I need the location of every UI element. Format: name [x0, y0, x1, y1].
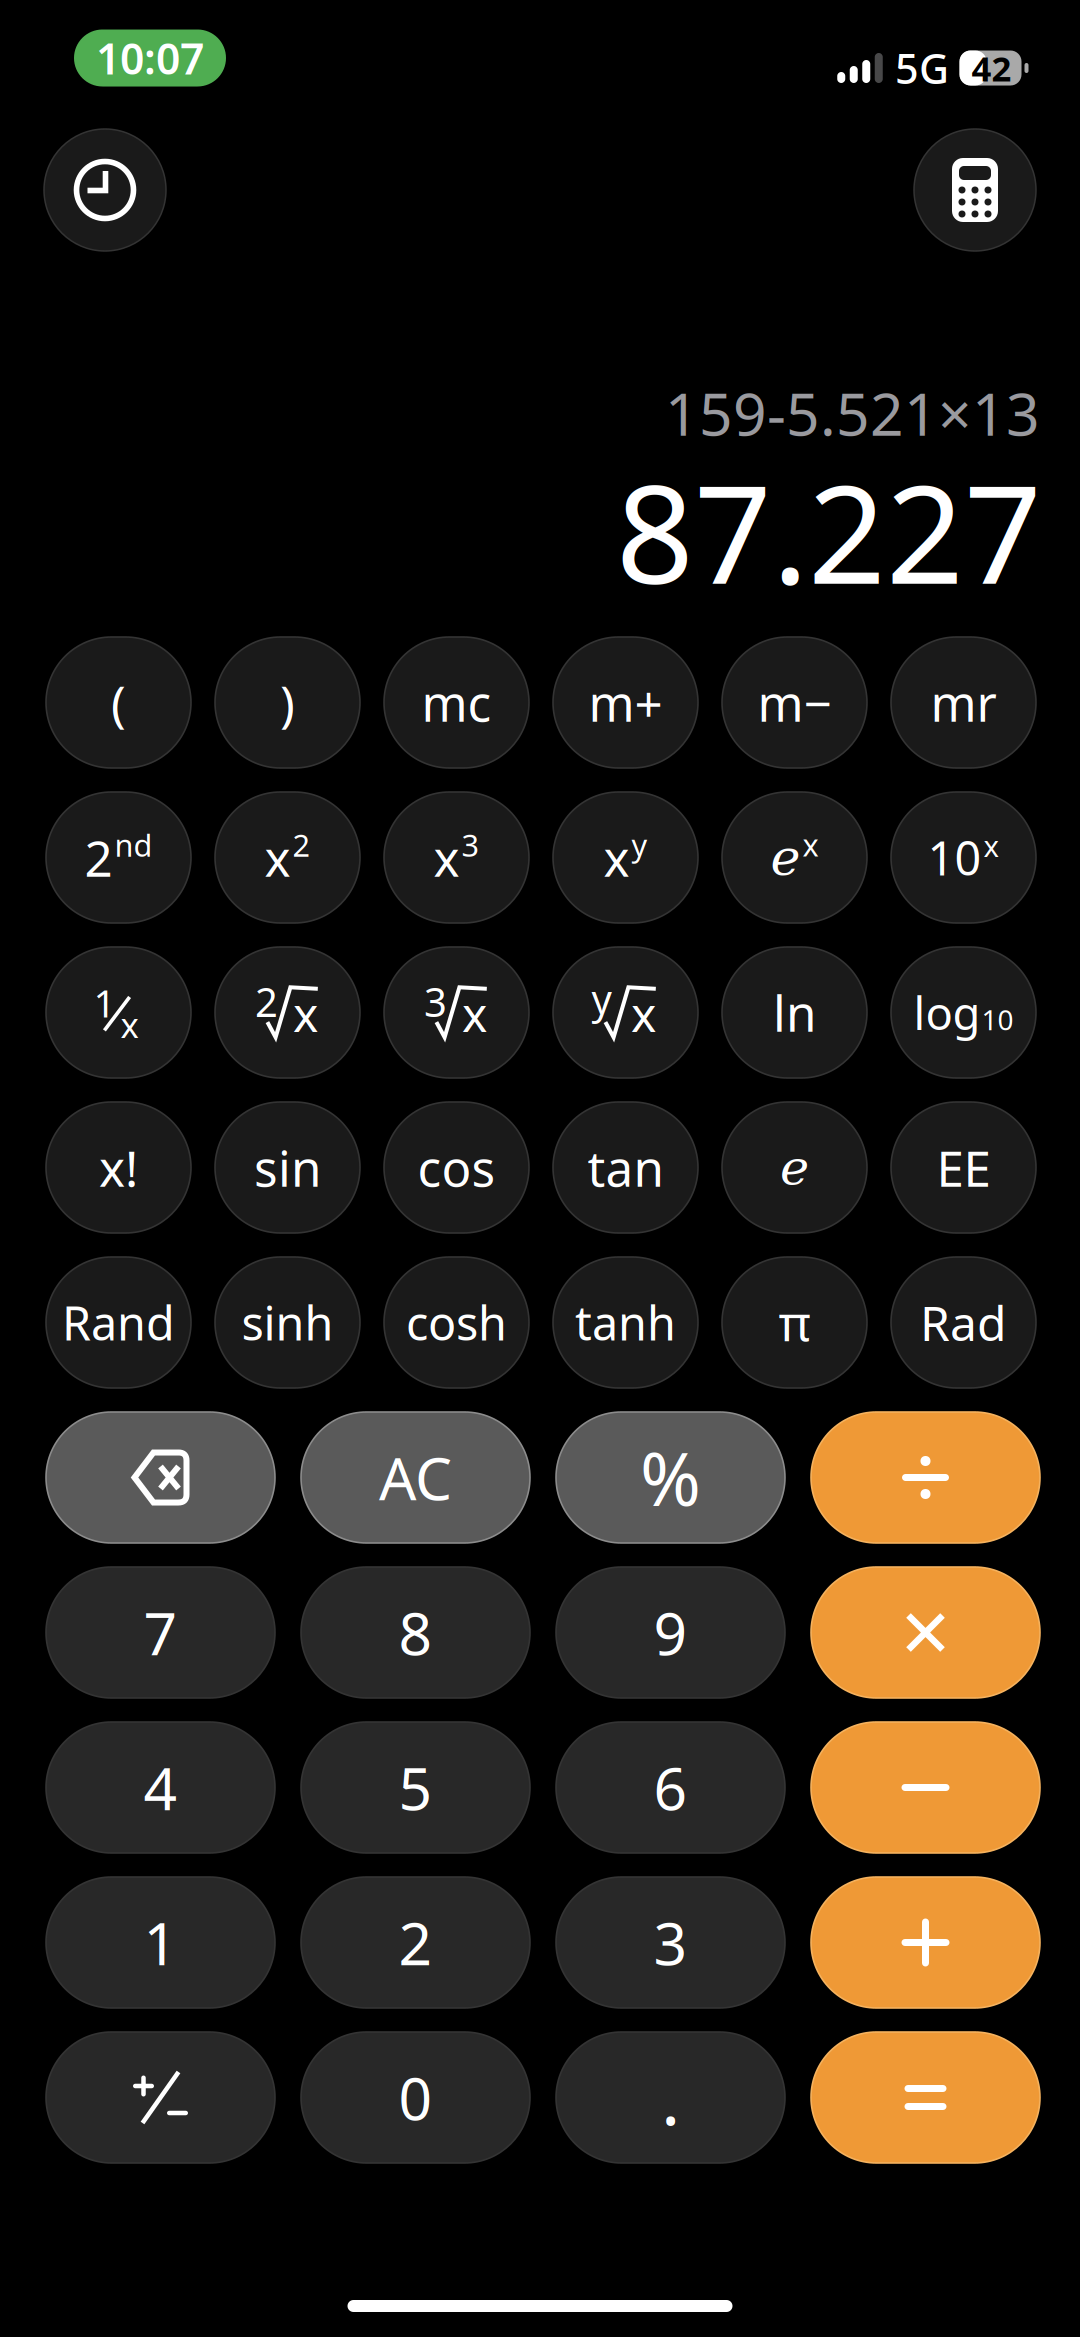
button[interactable]: Choose calculator mode	[914, 129, 1036, 251]
button[interactable]: 9	[556, 1567, 785, 1698]
button[interactable]: tanh	[553, 1257, 698, 1388]
button[interactable]: %	[556, 1412, 785, 1543]
staticText: 3	[461, 825, 479, 865]
button[interactable]: m−	[722, 637, 867, 768]
button[interactable]: )	[215, 637, 360, 768]
button[interactable]: 6	[556, 1722, 785, 1853]
button[interactable]: 2 nd	[46, 792, 191, 923]
button[interactable]: y root of x	[553, 947, 698, 1078]
staticText: m−	[757, 670, 831, 735]
button[interactable]: Equals	[811, 2032, 1040, 2163]
button[interactable]: Divide	[811, 1412, 1040, 1543]
staticText: x	[983, 826, 999, 865]
button[interactable]: 3 root of x	[384, 947, 529, 1078]
staticText: x!	[99, 1135, 138, 1200]
staticText: AC	[379, 1438, 452, 1516]
staticText: e	[780, 1139, 809, 1196]
staticText: Rad	[920, 1291, 1007, 1354]
button[interactable]: .	[556, 2032, 785, 2163]
staticText: x	[120, 1001, 138, 1047]
button[interactable]: Multiply	[811, 1567, 1040, 1698]
staticText: x	[293, 982, 318, 1045]
staticText: sin	[254, 1135, 321, 1200]
staticText: tan	[587, 1135, 663, 1200]
button[interactable]: 1	[46, 1877, 275, 2008]
button[interactable]: Add	[811, 1877, 1040, 2008]
button[interactable]: cos	[384, 1102, 529, 1233]
staticText: %	[640, 1429, 701, 1526]
button[interactable]: 2	[301, 1877, 530, 2008]
staticText: 1	[143, 1903, 177, 1981]
button[interactable]: History	[44, 129, 166, 251]
button[interactable]: mc	[384, 637, 529, 768]
button[interactable]: tan	[553, 1102, 698, 1233]
staticText: 2	[398, 1903, 432, 1981]
staticText: log	[913, 982, 980, 1043]
button[interactable]: sin	[215, 1102, 360, 1233]
button[interactable]: sinh	[215, 1257, 360, 1388]
staticText: sinh	[241, 1291, 333, 1353]
button[interactable]: 5	[301, 1722, 530, 1853]
staticText: x	[264, 825, 290, 890]
button[interactable]: 3	[556, 1877, 785, 2008]
staticText: cos	[417, 1135, 495, 1200]
staticText: 8	[398, 1593, 432, 1671]
button[interactable]: 0	[301, 2032, 530, 2163]
button[interactable]: π	[722, 1257, 867, 1388]
staticText: 1	[93, 977, 115, 1028]
staticText: e	[770, 828, 800, 887]
button[interactable]: e to the power of x	[722, 792, 867, 923]
staticText: 3	[424, 975, 447, 1028]
staticText: EE	[936, 1135, 990, 1200]
button[interactable]: 8	[301, 1567, 530, 1698]
button[interactable]: Subtract	[811, 1722, 1040, 1853]
button[interactable]: 4	[46, 1722, 275, 1853]
button[interactable]: m+	[553, 637, 698, 768]
button[interactable]: one over x	[46, 947, 191, 1078]
staticText: y	[591, 972, 611, 1025]
button[interactable]: cosh	[384, 1257, 529, 1388]
staticText: nd	[114, 825, 152, 865]
button[interactable]: AC	[301, 1412, 530, 1543]
staticText: 2	[84, 825, 112, 890]
button[interactable]: Delete	[46, 1412, 275, 1543]
staticText: 87.227	[616, 441, 1042, 621]
staticText: 3	[653, 1903, 687, 1981]
button[interactable]: mr	[891, 637, 1036, 768]
staticText: 4	[143, 1748, 177, 1826]
staticText: 159-5.521×13	[665, 374, 1040, 452]
staticText: x	[603, 825, 629, 890]
staticText: 0	[398, 2058, 432, 2136]
staticText: 42	[971, 45, 1011, 91]
staticText: 10	[927, 826, 981, 888]
staticText: x	[433, 825, 459, 890]
button[interactable]: 10 x	[891, 792, 1036, 923]
staticText: x	[462, 982, 487, 1045]
staticText: 2	[255, 975, 278, 1028]
staticText: )	[280, 670, 295, 735]
button[interactable]: log 10	[891, 947, 1036, 1078]
button[interactable]: ln	[722, 947, 867, 1078]
button[interactable]: Rad	[891, 1257, 1036, 1388]
staticText: Rand	[62, 1291, 175, 1353]
button[interactable]: 2 root of x	[215, 947, 360, 1078]
button[interactable]: 7	[46, 1567, 275, 1698]
staticText: π	[778, 1290, 810, 1355]
button[interactable]: Plus minus	[46, 2032, 275, 2163]
staticText: .	[661, 2050, 680, 2145]
button[interactable]: EE	[891, 1102, 1036, 1233]
staticText: cosh	[406, 1291, 507, 1353]
staticText: 10	[981, 1001, 1013, 1038]
button[interactable]: (	[46, 637, 191, 768]
button[interactable]: x!	[46, 1102, 191, 1233]
button[interactable]: Rand	[46, 1257, 191, 1388]
staticText: m+	[588, 670, 662, 735]
button[interactable]: e	[722, 1102, 867, 1233]
button[interactable]: x y	[553, 792, 698, 923]
staticText: 5G	[895, 41, 949, 95]
staticText: ln	[773, 980, 816, 1045]
staticText: x	[802, 824, 818, 865]
button[interactable]: x 3	[384, 792, 529, 923]
button[interactable]: x 2	[215, 792, 360, 923]
staticText: y	[631, 825, 647, 865]
